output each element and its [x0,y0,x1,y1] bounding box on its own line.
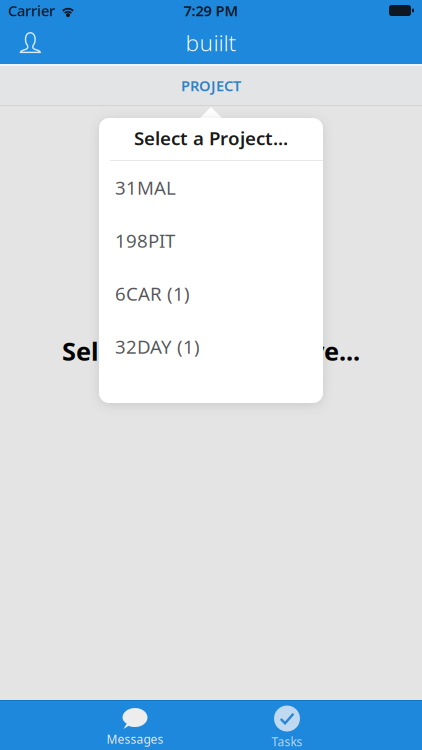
staticText: Messages [106,731,163,747]
button[interactable]: 32DAY (1) [99,320,323,373]
button[interactable]: PROJECT [0,66,422,105]
staticText: Select a project above... [62,334,360,368]
staticText: 32DAY (1) [115,334,200,359]
staticText: Tasks [271,733,302,749]
staticText: PROJECT [181,76,241,95]
button[interactable]: Tasks [249,701,325,750]
button[interactable]: Messages [97,701,173,750]
button[interactable]: Account [0,21,61,64]
staticText: Carrier [8,1,55,20]
staticText: Select a Project... [134,126,288,150]
button[interactable]: 6CAR (1) [99,267,323,320]
staticText: 198PIT [115,228,175,253]
staticText: buiilt [185,27,236,57]
staticText: 31MAL [115,175,176,200]
button[interactable]: 31MAL [99,161,323,214]
staticText: 7:29 PM [183,1,238,20]
button[interactable]: 198PIT [99,214,323,267]
staticText: 6CAR (1) [115,281,190,306]
